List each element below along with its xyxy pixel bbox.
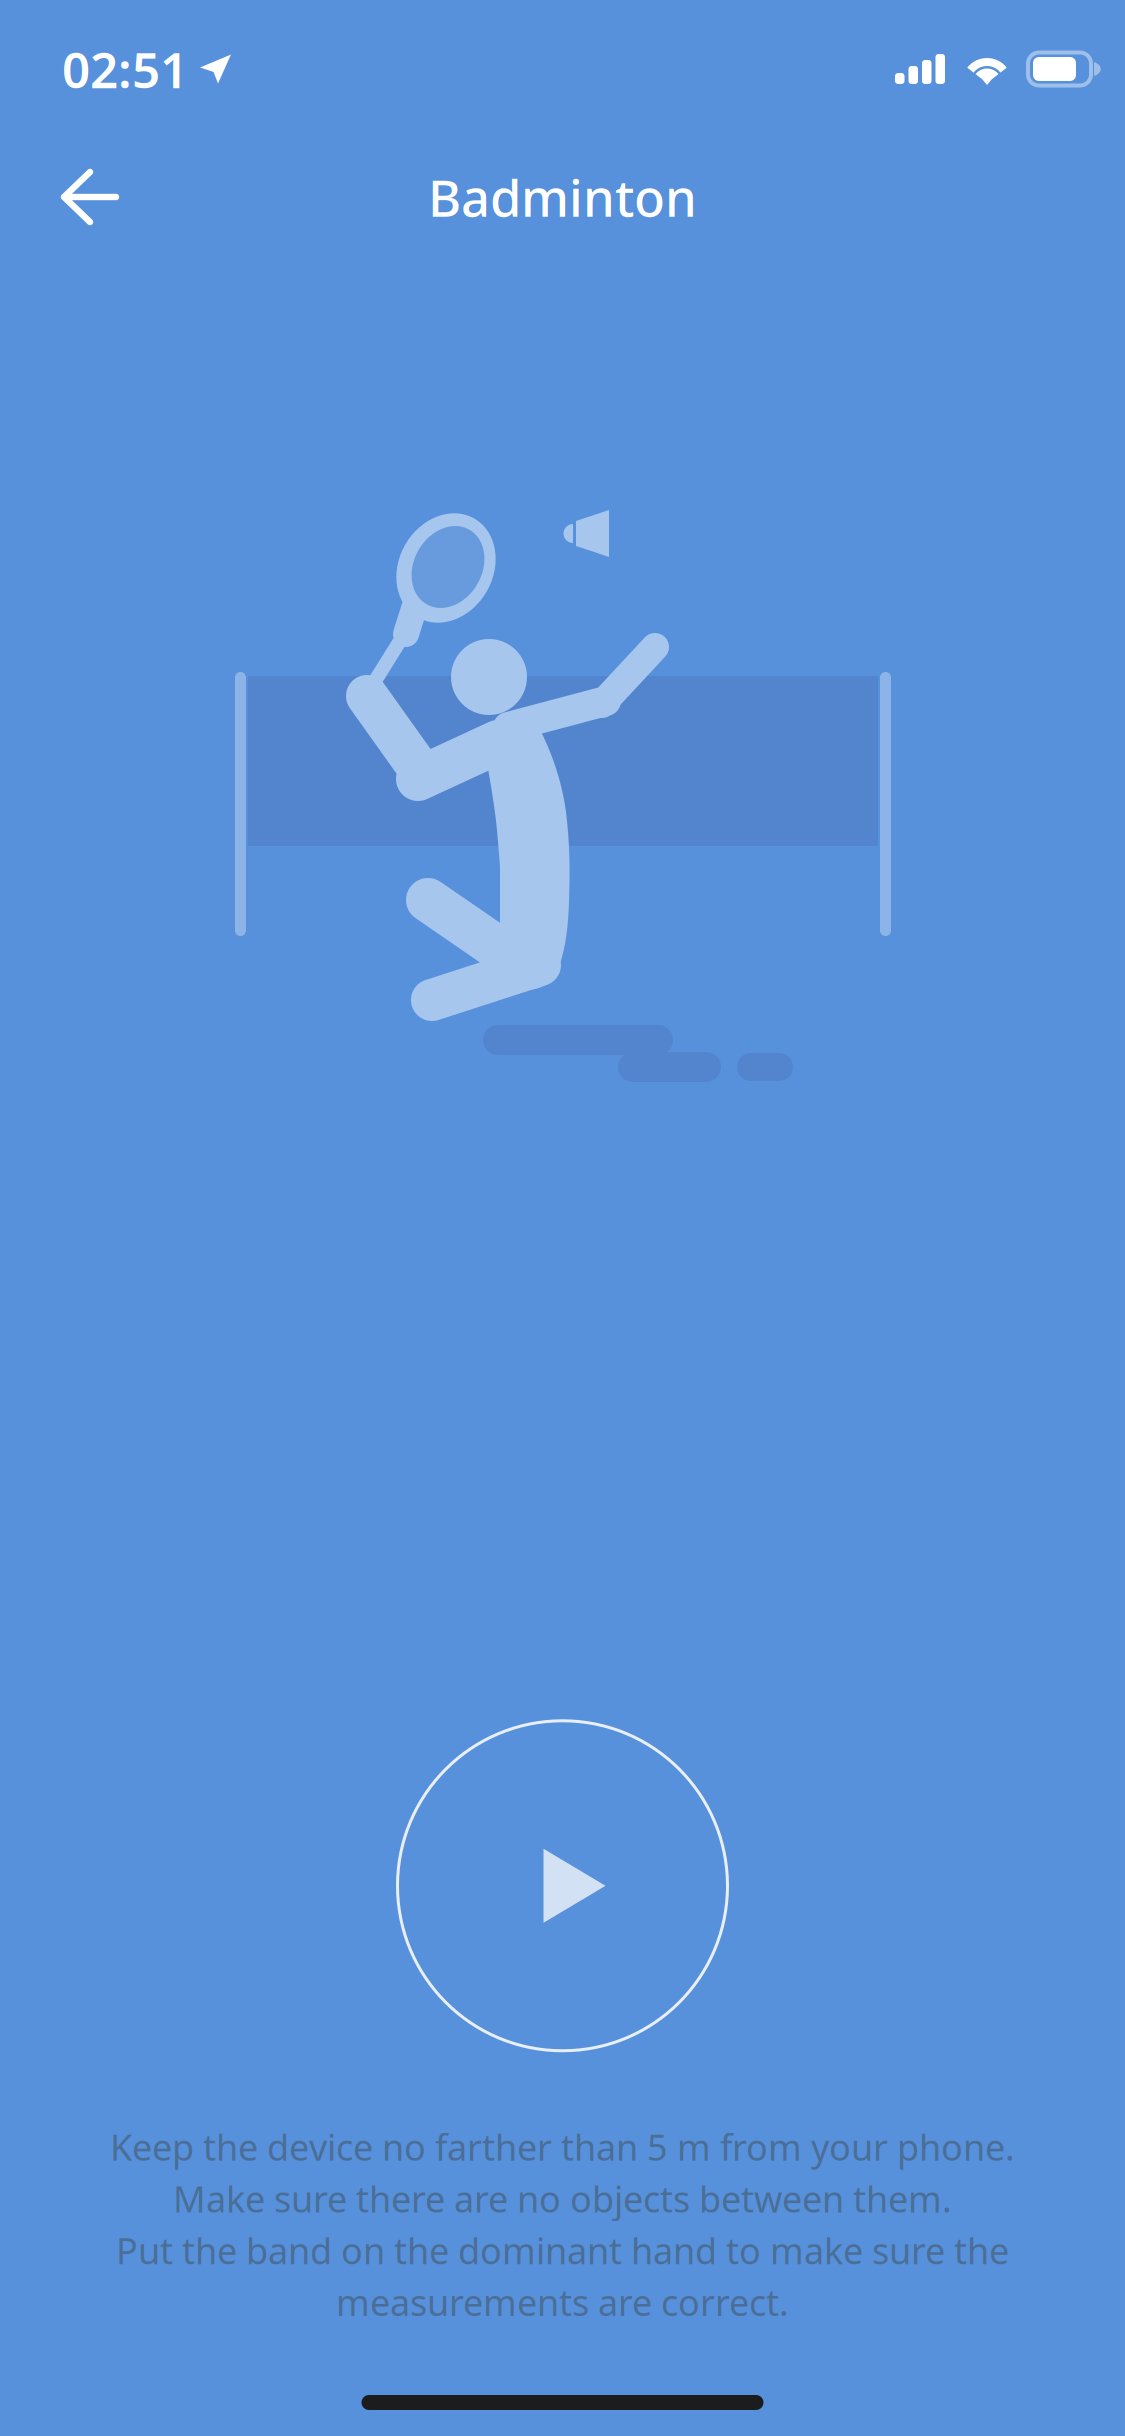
staticText: 02:51	[62, 36, 188, 102]
button[interactable]: Back	[0, 142, 146, 252]
button[interactable]: Start workout	[392, 1716, 732, 2056]
staticText: Keep the device no farther than 5 m from…	[110, 2123, 1015, 2171]
staticText: Badminton	[428, 163, 697, 231]
staticText: Make sure there are no objects between t…	[173, 2175, 952, 2222]
staticText: Put the band on the dominant hand to mak…	[116, 2226, 1009, 2274]
staticText: measurements are correct.	[336, 2278, 789, 2326]
